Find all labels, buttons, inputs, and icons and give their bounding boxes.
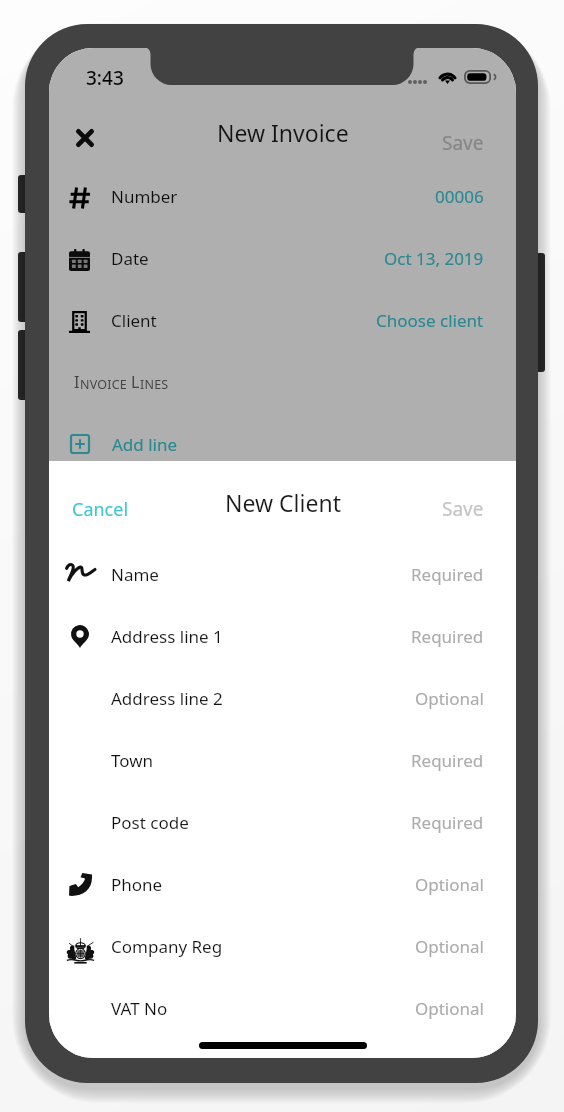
button[interactable]: Name (49, 544, 516, 606)
staticText: I (74, 371, 80, 393)
staticText: Required (411, 625, 484, 648)
button[interactable]: Client (49, 292, 516, 354)
staticText: Company Reg (111, 935, 223, 958)
staticText: Add line (112, 433, 178, 456)
button[interactable]: Date (49, 230, 516, 292)
staticText: NVOICE (80, 376, 131, 393)
staticText: Optional (415, 873, 484, 896)
button[interactable]: Add line (49, 416, 516, 478)
staticText: Cancel (72, 497, 129, 522)
staticText: Client (111, 309, 157, 332)
staticText: Number (111, 185, 178, 208)
staticText: Oct 13, 2019 (384, 247, 484, 270)
button[interactable]: Save (428, 480, 516, 526)
button[interactable]: VAT No (49, 978, 516, 1040)
staticText: VAT No (111, 997, 168, 1020)
button[interactable]: Company Reg (49, 916, 516, 978)
button[interactable]: Phone (49, 854, 516, 916)
staticText: Address line 1 (111, 625, 223, 648)
button[interactable]: Save (428, 114, 516, 160)
staticText: Phone (111, 873, 163, 896)
staticText: Optional (415, 935, 484, 958)
button[interactable]: Cancel (49, 480, 143, 526)
button[interactable]: Number (49, 168, 516, 230)
staticText: Optional (415, 997, 484, 1020)
staticText: New Invoice (217, 117, 349, 148)
button[interactable]: Close (63, 115, 107, 159)
staticText: Post code (111, 811, 189, 834)
staticText: Town (111, 749, 154, 772)
button[interactable]: Address line 1 (49, 606, 516, 668)
button[interactable]: Town (49, 730, 516, 792)
staticText: New Client (225, 487, 341, 518)
staticText: INES (140, 376, 169, 393)
staticText: Required (411, 749, 484, 772)
staticText: Name (111, 563, 159, 586)
staticText: Date (111, 247, 149, 270)
button[interactable]: Address line 2 (49, 668, 516, 730)
staticText: Save (442, 496, 484, 522)
staticText: Save (442, 130, 484, 156)
staticText: Optional (415, 687, 484, 710)
staticText: Choose client (376, 309, 484, 332)
staticText: 3:43 (86, 65, 124, 91)
staticText: L (131, 371, 140, 393)
staticText: Required (411, 811, 484, 834)
button[interactable]: Post code (49, 792, 516, 854)
staticText: Required (411, 563, 484, 586)
staticText: Address line 2 (111, 687, 223, 710)
staticText: 00006 (435, 185, 484, 208)
